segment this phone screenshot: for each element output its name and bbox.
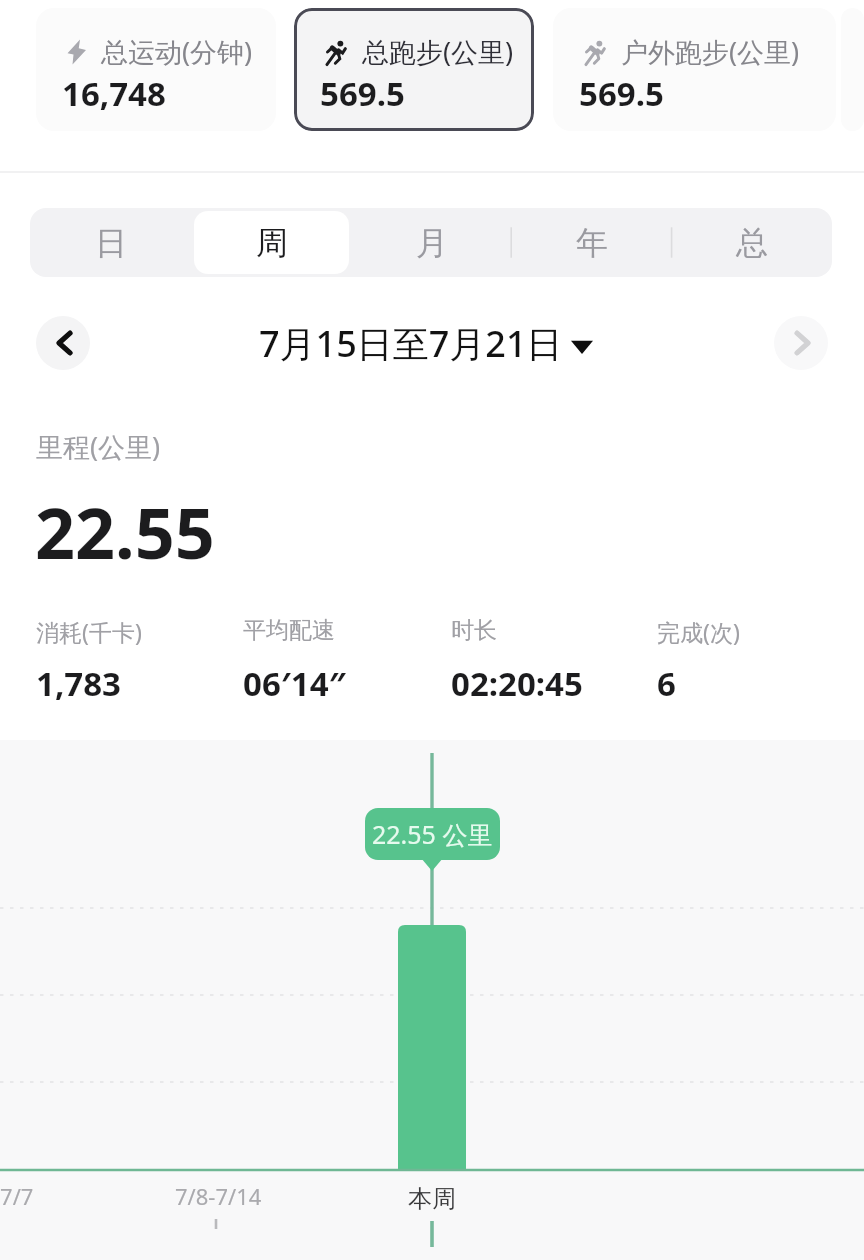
staticText: 总 [736,223,768,263]
staticText: 年 [576,223,608,263]
button[interactable]: 周 [194,211,349,274]
staticText: 06′14″ [243,661,346,706]
staticText: 户外跑步(公里) [621,33,800,70]
staticText: 22.55 公里 [372,817,493,851]
staticText: 569.5 [579,71,664,116]
button[interactable]: 22.55 公里 [365,808,500,860]
button[interactable]: 总 [675,211,829,274]
staticText: 总运动(分钟) [101,33,253,70]
staticText: 里程(公里) [36,428,161,465]
staticText: 总跑步(公里) [362,33,514,70]
button[interactable]: 年 [515,211,669,274]
staticText: 569.5 [320,71,405,116]
button[interactable]: 户外跑步(公里) [553,8,836,131]
button[interactable]: 总跑步(公里) [294,8,534,131]
staticText: 本周 [408,1184,456,1214]
button[interactable]: 月 [355,211,509,274]
staticText: 周 [256,223,288,263]
staticText: -7/7 [0,1181,34,1211]
staticText: 02:20:45 [451,661,583,706]
staticText: 月 [416,223,448,263]
staticText: 16,748 [62,71,166,116]
staticText: 平均配速 [243,616,335,645]
staticText: 6 [657,661,676,706]
staticText: 完成(次) [657,616,740,647]
staticText: 日 [95,223,127,263]
staticText: 7/8-7/14 [175,1181,262,1211]
staticText: 7月15日至7月21日 [259,319,563,368]
staticText: 1,783 [36,661,121,706]
staticText: 时长 [451,616,497,645]
button[interactable]: Previous week [36,316,90,370]
staticText: 22.55 [35,484,215,579]
button[interactable]: Next week [774,316,828,370]
button[interactable]: 总运动(分钟) [36,8,276,131]
staticText: 消耗(千卡) [36,616,142,647]
button[interactable]: 日 [33,211,188,274]
